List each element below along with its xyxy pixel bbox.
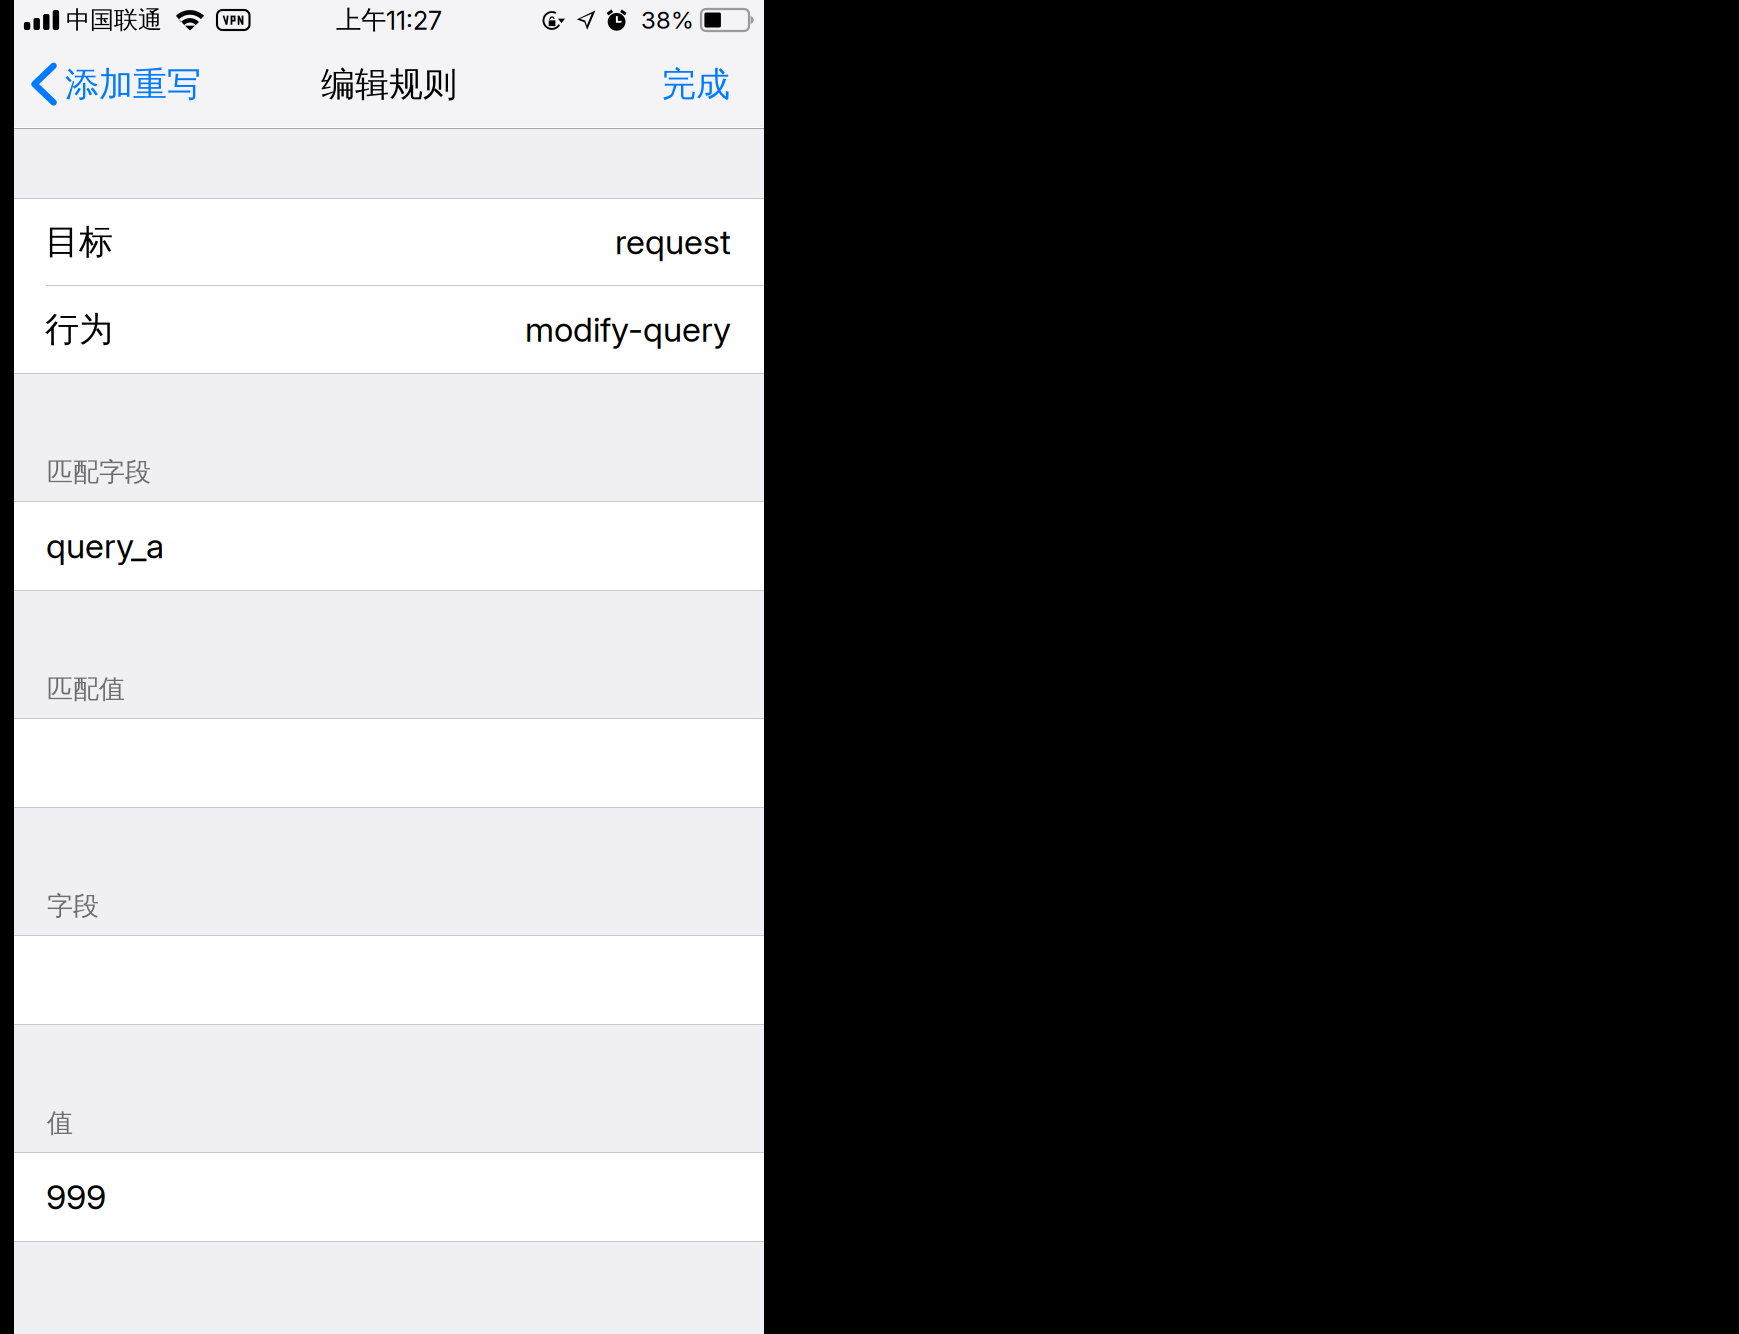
button[interactable]: 目标: [14, 199, 764, 285]
button[interactable]: query_a: [14, 502, 764, 590]
staticText: 上午11:27: [336, 4, 442, 36]
button[interactable]: 添加重写: [14, 40, 213, 128]
staticText: 值: [47, 1107, 73, 1139]
staticText: 完成: [662, 63, 730, 106]
staticText: 目标: [45, 221, 113, 263]
staticText: 匹配值: [47, 673, 125, 705]
staticText: 999: [46, 1176, 106, 1217]
staticText: query_a: [46, 525, 164, 566]
staticText: 字段: [47, 890, 99, 922]
staticText: 编辑规则: [321, 63, 457, 106]
staticText: 匹配字段: [47, 456, 151, 488]
staticText: 38%: [641, 5, 694, 34]
button[interactable]: 999: [14, 1153, 764, 1241]
staticText: 行为: [45, 308, 113, 351]
staticText: 中国联通: [66, 5, 162, 35]
staticText: request: [615, 221, 731, 262]
button[interactable]: 行为: [14, 286, 764, 373]
button[interactable]: 完成: [648, 40, 764, 128]
staticText: 添加重写: [65, 63, 201, 106]
staticText: modify-query: [525, 309, 731, 350]
